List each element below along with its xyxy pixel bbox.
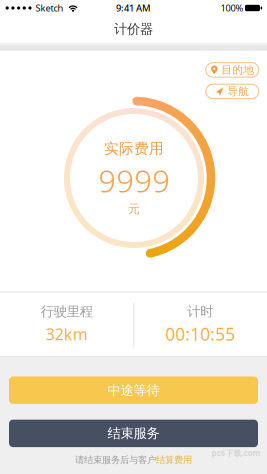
staticText: 请结束服务后与客户 [75,454,156,466]
button[interactable]: 导航 [206,84,259,99]
staticText: Sketch [35,2,63,14]
staticText: 结束服务 [107,425,159,442]
staticText: 行驶里程 [41,303,93,320]
staticText: 计时 [187,303,213,320]
staticText: 9:41 AM [116,2,151,14]
staticText: 32km [46,323,88,345]
staticText: 计价器 [114,21,153,37]
staticText: 中途等待 [107,382,159,398]
staticText: pc6下载.com [211,448,260,458]
button[interactable]: 目的地 [206,63,259,77]
staticText: 实际费用 [104,139,164,157]
staticText: 元 [128,202,140,216]
staticText: 100% [220,2,243,14]
staticText: 结算费用 [156,454,192,466]
staticText: 目的地 [221,63,254,76]
button[interactable]: 中途等待 [9,376,258,404]
staticText: 导航 [227,85,249,98]
staticText: 9999 [98,160,170,201]
staticText: 00:10:55 [165,322,235,345]
button[interactable]: 结束服务 [9,420,258,447]
